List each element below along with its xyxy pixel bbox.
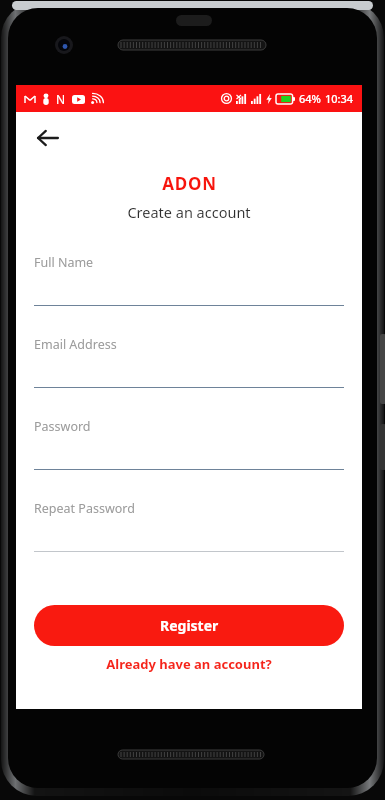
staticText: ADON	[162, 172, 217, 195]
staticText: Email Address	[34, 336, 117, 353]
staticText: Already have an account?	[106, 655, 272, 673]
staticText: Create an account	[127, 202, 251, 222]
button[interactable]: Already have an account?	[34, 646, 344, 682]
staticText: Repeat Password	[34, 500, 135, 517]
staticText: Password	[34, 418, 91, 435]
staticText: N	[56, 91, 66, 107]
button[interactable]: Back	[32, 122, 64, 154]
button[interactable]: Register	[34, 605, 344, 646]
staticText: 64%	[299, 91, 321, 106]
staticText: 10:34	[325, 91, 354, 106]
staticText: Full Name	[34, 254, 94, 271]
staticText: Register	[160, 616, 219, 635]
